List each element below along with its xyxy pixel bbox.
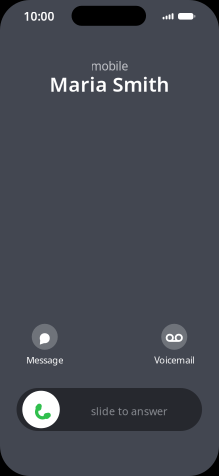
staticText: Message [26, 354, 63, 366]
button[interactable]: Message [26, 324, 63, 366]
staticText: Maria Smith [49, 71, 169, 97]
staticText: 10:00 [23, 8, 54, 24]
button[interactable]: Slide to answer [16, 388, 202, 431]
staticText: mobile [90, 58, 128, 74]
button[interactable]: Voicemail [154, 324, 194, 366]
staticText: Voicemail [154, 354, 194, 366]
staticText: slide to answer [91, 404, 167, 418]
